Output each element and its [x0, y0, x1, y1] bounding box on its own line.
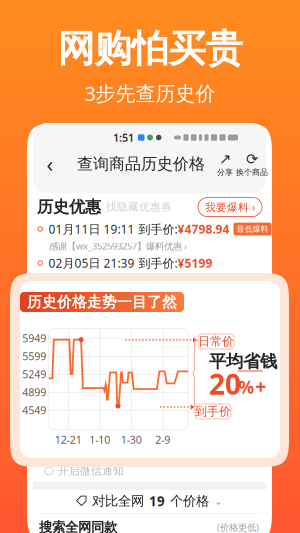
- button[interactable]: 我要爆料 ›: [198, 197, 262, 217]
- staticText: 网购怕买贵: [57, 26, 242, 72]
- staticText: %: [238, 375, 254, 398]
- button[interactable]: 对比全网: [27, 493, 272, 509]
- staticText: 1:51: [113, 130, 134, 145]
- staticText: 1-10: [89, 432, 110, 447]
- staticText: 02月05日 21:39: [48, 255, 134, 271]
- staticText: 到手价:: [138, 255, 177, 271]
- staticText: ¥4798.94: [177, 221, 229, 237]
- staticText: 日常价: [198, 334, 234, 349]
- staticText: 19: [149, 492, 165, 510]
- staticText: ⟳: [246, 151, 258, 167]
- staticText: 个价格: [170, 493, 209, 509]
- staticText: 1-30: [121, 432, 142, 447]
- staticText: 到手价: [195, 404, 231, 419]
- staticText: 平均省钱: [209, 351, 277, 372]
- staticText: 历史价格走势一目了然: [27, 293, 177, 311]
- staticText: 对比全网: [92, 493, 144, 509]
- staticText: ↗: [219, 151, 231, 167]
- staticText: 换个商品: [236, 167, 268, 177]
- button[interactable]: ↗: [213, 152, 237, 176]
- staticText: 开启微信通知: [58, 464, 124, 477]
- staticText: ‹: [46, 150, 53, 178]
- staticText: (价格更低): [217, 521, 259, 533]
- staticText: ¥5199: [177, 255, 212, 271]
- button[interactable]: Back: [39, 151, 61, 177]
- staticText: 4549: [22, 403, 46, 417]
- staticText: 12-21: [55, 432, 82, 447]
- staticText: +: [255, 373, 266, 399]
- staticText: 我要爆料 ›: [205, 200, 255, 214]
- staticText: 2-9: [155, 432, 170, 447]
- staticText: 01月11日 19:11: [48, 221, 134, 237]
- staticText: 5949: [22, 331, 46, 345]
- staticText: 分享: [217, 167, 233, 177]
- staticText: 感谢【wx_352593257】爆料优惠 ›: [49, 240, 187, 252]
- staticText: 搜索全网同款: [39, 519, 117, 533]
- staticText: ⌄: [214, 495, 223, 507]
- staticText: 找隐藏优惠券: [106, 200, 172, 213]
- button[interactable]: 开启微信通知: [27, 463, 272, 479]
- staticText: 历史优惠: [37, 197, 101, 217]
- staticText: 4899: [22, 385, 46, 399]
- staticText: 5599: [22, 349, 46, 363]
- staticText: 到手价:: [138, 221, 177, 237]
- button[interactable]: ⟳: [237, 152, 267, 176]
- staticText: 查询商品历史价格: [77, 154, 205, 174]
- staticText: 最低爆料: [236, 224, 268, 234]
- staticText: 5249: [22, 367, 46, 381]
- staticText: 20: [209, 365, 241, 403]
- staticText: 3步先查历史价: [84, 80, 215, 106]
